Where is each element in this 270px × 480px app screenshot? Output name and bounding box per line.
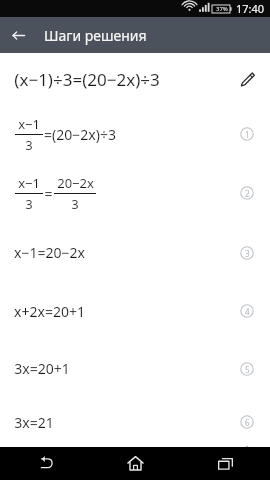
button[interactable]: 3x=20+1 (0, 340, 270, 397)
staticText: 3x=20+1 (14, 359, 70, 378)
staticText: = (44, 184, 53, 203)
staticText: 5 (245, 364, 250, 375)
staticText: =(20−2x)÷3 (44, 125, 116, 144)
staticText: Шаги решения (44, 26, 147, 45)
staticText: 17:40 (236, 1, 265, 16)
staticText: x−1 (18, 115, 40, 133)
button[interactable]: Home (90, 447, 180, 480)
staticText: 3x=21 (14, 413, 54, 432)
button[interactable]: x+2x=20+1 (0, 282, 270, 340)
staticText: 4 (245, 306, 250, 317)
staticText: 37% (216, 5, 228, 13)
staticText: 2 (245, 188, 250, 199)
button[interactable]: Back (0, 17, 36, 53)
button[interactable]: 3x=21 (0, 397, 270, 447)
button[interactable]: x−1=20−2x (0, 223, 270, 282)
staticText: x−1=20−2x (14, 243, 85, 262)
button[interactable]: Recent apps (180, 447, 270, 480)
staticText: x+2x=20+1 (14, 302, 85, 321)
button[interactable]: Back (0, 447, 90, 480)
staticText: 1 (245, 129, 250, 140)
button[interactable]: x−1 (0, 105, 270, 163)
staticText: 3 (71, 195, 79, 213)
button[interactable]: Edit equation (232, 64, 262, 94)
staticText: 3 (245, 248, 250, 259)
button[interactable]: x−1 (0, 163, 270, 223)
staticText: (x−1)÷3=(20−2x)÷3 (14, 68, 160, 91)
staticText: x−1 (18, 174, 40, 192)
staticText: 20−2x (57, 174, 94, 192)
staticText: 6 (245, 417, 250, 428)
staticText: 3 (25, 195, 33, 213)
staticText: 3 (25, 136, 33, 154)
